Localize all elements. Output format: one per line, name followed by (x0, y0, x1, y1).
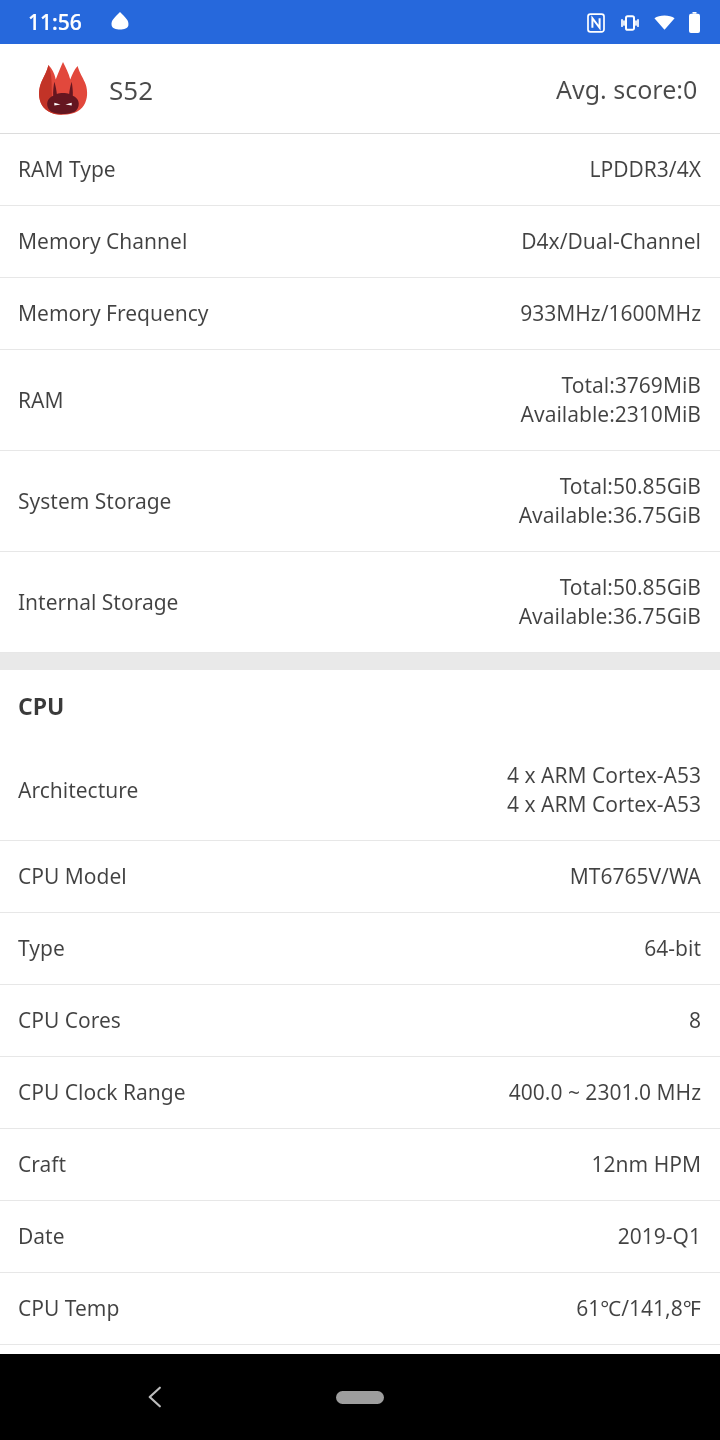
staticText: D4x/Dual-Channel (521, 227, 701, 256)
button[interactable]: CPU Model (0, 841, 720, 913)
staticText: 12nm HPM (591, 1150, 701, 1179)
staticText: RAM (18, 386, 64, 415)
staticText: Total:3769MiB (561, 371, 701, 400)
button[interactable]: CPU Temp (0, 1273, 720, 1345)
staticText: Architecture (18, 776, 139, 805)
staticText: 61℃/141,8℉ (576, 1294, 701, 1323)
button[interactable]: Memory Channel (0, 206, 720, 278)
staticText: 933MHz/1600MHz (520, 299, 701, 328)
button[interactable]: RAM Type (0, 134, 720, 206)
button[interactable]: Architecture (0, 740, 720, 841)
button[interactable]: RAM (0, 350, 720, 451)
staticText: Available:2310MiB (520, 400, 701, 429)
staticText: CPU (18, 690, 65, 721)
staticText: Internal Storage (18, 588, 179, 617)
staticText: S52 (109, 72, 154, 107)
staticText: CPU Clock Range (18, 1078, 186, 1107)
staticText: CPU Model (18, 862, 127, 891)
staticText: Available:36.75GiB (518, 501, 701, 530)
staticText: Available:36.75GiB (518, 602, 701, 631)
staticText: LPDDR3/4X (589, 155, 701, 184)
staticText: 4 x ARM Cortex-A53 (507, 761, 701, 790)
staticText: 8 (688, 1006, 701, 1035)
staticText: Craft (18, 1150, 67, 1179)
staticText: 11:56 (28, 8, 82, 37)
button[interactable]: System Storage (0, 451, 720, 552)
button[interactable]: Internal Storage (0, 552, 720, 653)
staticText: System Storage (18, 487, 172, 516)
staticText: Total:50.85GiB (559, 472, 701, 501)
button[interactable]: Type (0, 913, 720, 985)
button[interactable]: CPU Cores (0, 985, 720, 1057)
button[interactable]: Avg. score:0 (556, 72, 698, 106)
button[interactable]: S52 (35, 61, 154, 117)
button[interactable]: Craft (0, 1129, 720, 1201)
staticText: 2019-Q1 (617, 1222, 701, 1251)
button[interactable]: CPU Clock Range (0, 1057, 720, 1129)
staticText: Type (18, 934, 65, 963)
staticText: MT6765V/WA (569, 862, 701, 891)
staticText: RAM Type (18, 155, 116, 184)
staticText: CPU Cores (18, 1006, 121, 1035)
staticText: Date (18, 1222, 65, 1251)
button[interactable]: Back (125, 1367, 185, 1427)
staticText: 64-bit (644, 934, 701, 963)
button[interactable]: Memory Frequency (0, 278, 720, 350)
button[interactable]: Date (0, 1201, 720, 1273)
staticText: 400.0 ~ 2301.0 MHz (508, 1078, 701, 1107)
staticText: CPU Temp (18, 1294, 120, 1323)
staticText: Memory Channel (18, 227, 188, 256)
staticText: 4 x ARM Cortex-A53 (507, 790, 701, 819)
staticText: Total:50.85GiB (559, 573, 701, 602)
staticText: Memory Frequency (18, 299, 209, 328)
button[interactable]: Home (320, 1380, 400, 1414)
